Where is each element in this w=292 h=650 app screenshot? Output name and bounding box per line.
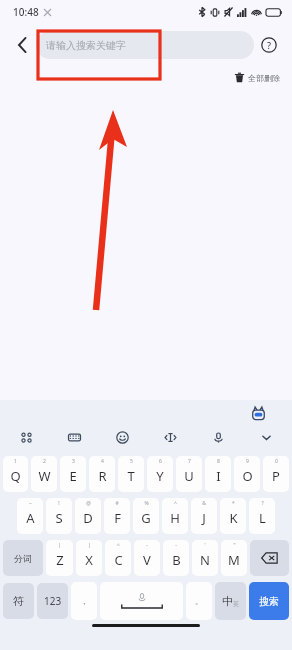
staticText: 123 [44,594,62,608]
staticText: 3 [72,458,75,465]
staticText: ' [204,542,206,549]
staticText: U [184,467,194,485]
staticText: 9 [246,458,249,465]
staticText: G [141,509,151,527]
button[interactable]: 符 [3,583,34,619]
staticText: - [146,542,148,549]
staticText: | [58,542,61,549]
staticText: M [228,551,240,569]
button[interactable]: Keyboard layout [62,425,86,449]
button[interactable]: | [46,540,73,576]
staticText: Y [156,467,164,485]
button[interactable]: 中 [215,582,246,620]
button[interactable]: Text editing [158,425,182,449]
staticText: H [170,509,180,527]
button[interactable]: 全部删除 [232,70,282,85]
staticText: * [232,500,235,507]
button[interactable]: @ [75,498,101,534]
button[interactable]: Collapse keyboard [254,425,278,449]
staticText: ? [267,39,272,51]
button[interactable]: - [134,540,160,576]
button[interactable]: & [191,498,217,534]
button[interactable]: Space [100,582,183,620]
button[interactable]: # [104,498,130,534]
button[interactable]: * [220,498,246,534]
button[interactable]: | [76,540,102,576]
button[interactable]: 8 [205,456,231,492]
staticText: 10:48 [13,5,39,19]
button[interactable]: Apps [14,425,38,449]
button[interactable]: % [133,498,159,534]
staticText: % [144,500,149,507]
button[interactable]: Backspace [250,540,289,576]
staticText: " [233,542,236,549]
staticText: @ [86,500,91,507]
button[interactable]: 。 [186,582,212,620]
button[interactable]: ? [249,498,275,534]
button[interactable]: 9 [234,456,260,492]
staticText: 7 [188,458,191,465]
staticText: O [242,467,253,485]
button[interactable]: ' [192,540,218,576]
staticText: P [272,467,280,485]
staticText: R [98,467,107,485]
staticText: C [114,551,123,569]
staticText: K [229,509,238,527]
staticText: 5 [130,458,133,465]
button[interactable]: 2 [31,456,57,492]
staticText: 搜索 [259,595,279,608]
button[interactable]: Voice input [206,425,230,449]
button[interactable]: 5 [118,456,144,492]
button[interactable]: - [163,540,189,576]
staticText: T [127,467,135,485]
button[interactable]: ! [46,498,72,534]
staticText: 0 [275,458,278,465]
staticText: 英 [233,600,239,608]
button[interactable]: ， [71,582,97,620]
staticText: W [38,467,51,485]
button[interactable]: Back [8,31,36,59]
button[interactable]: 请输入搜索关键字 [36,31,254,59]
staticText: I [216,467,221,485]
button[interactable]: 6 [147,456,173,492]
staticText: N [200,551,210,569]
staticText: D [83,509,93,527]
staticText: 4 [101,458,104,465]
staticText: ! [58,500,60,507]
staticText: F [114,509,121,527]
staticText: S [55,509,63,527]
button[interactable]: 123 [37,583,68,619]
button[interactable]: 7 [176,456,202,492]
staticText: # [115,500,119,507]
button[interactable]: 4 [89,456,115,492]
button[interactable]: 搜索 [249,582,289,620]
staticText: X [85,551,93,569]
staticText: 。 [195,596,203,606]
staticText: ， [80,596,88,606]
staticText: - [175,542,177,549]
button[interactable]: Emoji [110,425,134,449]
button[interactable]: 分词 [3,540,43,576]
button[interactable]: ~ [17,498,43,534]
staticText: 2 [43,458,46,465]
button[interactable]: 0 [263,456,289,492]
staticText: E [69,467,77,485]
staticText: A [26,509,35,527]
button[interactable]: ^ [105,540,131,576]
button[interactable]: Assistant [249,404,268,423]
button[interactable]: " [221,540,247,576]
button[interactable]: 1 [3,456,28,492]
staticText: V [143,551,151,569]
staticText: 请输入搜索关键字 [46,39,126,52]
staticText: Q [10,467,21,485]
button[interactable]: Help [254,30,284,60]
button[interactable]: 3 [60,456,86,492]
staticText: & [202,500,206,507]
staticText: 8 [217,458,220,465]
staticText: 符 [13,594,24,608]
staticText: 中 [222,594,233,608]
button[interactable]: ^ [162,498,188,534]
staticText: ^ [117,542,120,549]
staticText: 1 [14,458,17,465]
staticText: L [259,509,266,527]
